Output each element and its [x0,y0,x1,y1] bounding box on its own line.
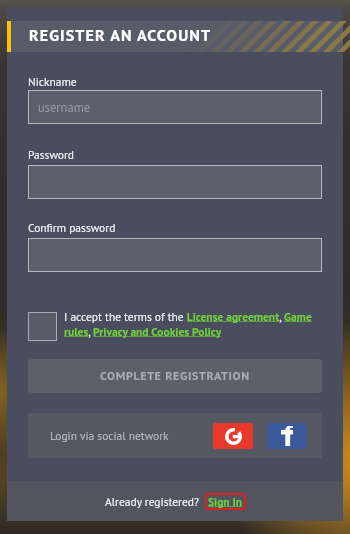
staticText: username [38,99,91,115]
staticText: COMPLETE REGISTRATION [100,368,250,384]
staticText: Nickname [28,74,77,89]
button[interactable]: Accept terms checkbox [28,312,57,341]
staticText: Sign In [208,494,243,509]
button[interactable]: Sign In [208,494,243,509]
staticText: I accept the terms of the License agreem… [64,309,322,339]
button[interactable] [28,165,322,199]
staticText: REGISTER AN ACCOUNT [29,25,212,46]
staticText: Login via social network [50,428,169,443]
button[interactable]: COMPLETE REGISTRATION [28,359,322,393]
button[interactable]: Sign in with Facebook [267,423,307,449]
staticText: Confirm password [28,220,116,235]
staticText: Password [28,147,74,162]
staticText: Already registered? [105,494,200,509]
button[interactable]: username [28,90,322,124]
button[interactable]: Sign in with Google [213,423,253,449]
button[interactable] [28,238,322,272]
